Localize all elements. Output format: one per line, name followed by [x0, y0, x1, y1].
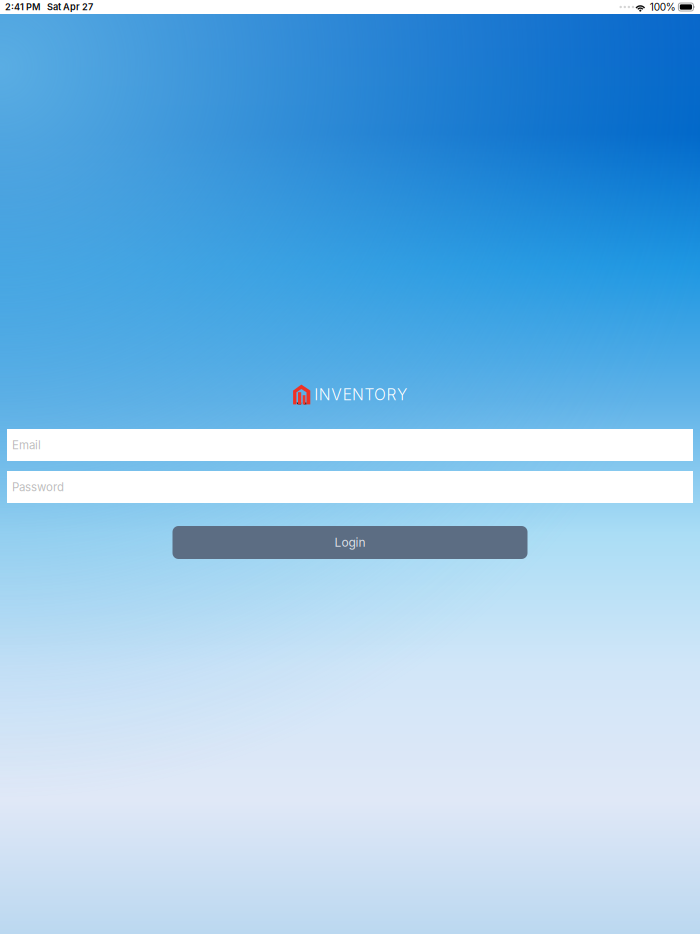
staticText: 100%: [650, 1, 676, 13]
button[interactable]: Password: [7, 471, 693, 503]
staticText: INVENTORY: [314, 385, 407, 404]
button[interactable]: Login: [172, 526, 527, 559]
staticText: Email: [12, 438, 41, 452]
staticText: Password: [12, 480, 64, 494]
button[interactable]: Email: [7, 429, 693, 461]
staticText: Sat Apr 27: [47, 1, 93, 12]
staticText: Login: [334, 535, 365, 550]
staticText: 2:41 PM: [5, 1, 40, 12]
